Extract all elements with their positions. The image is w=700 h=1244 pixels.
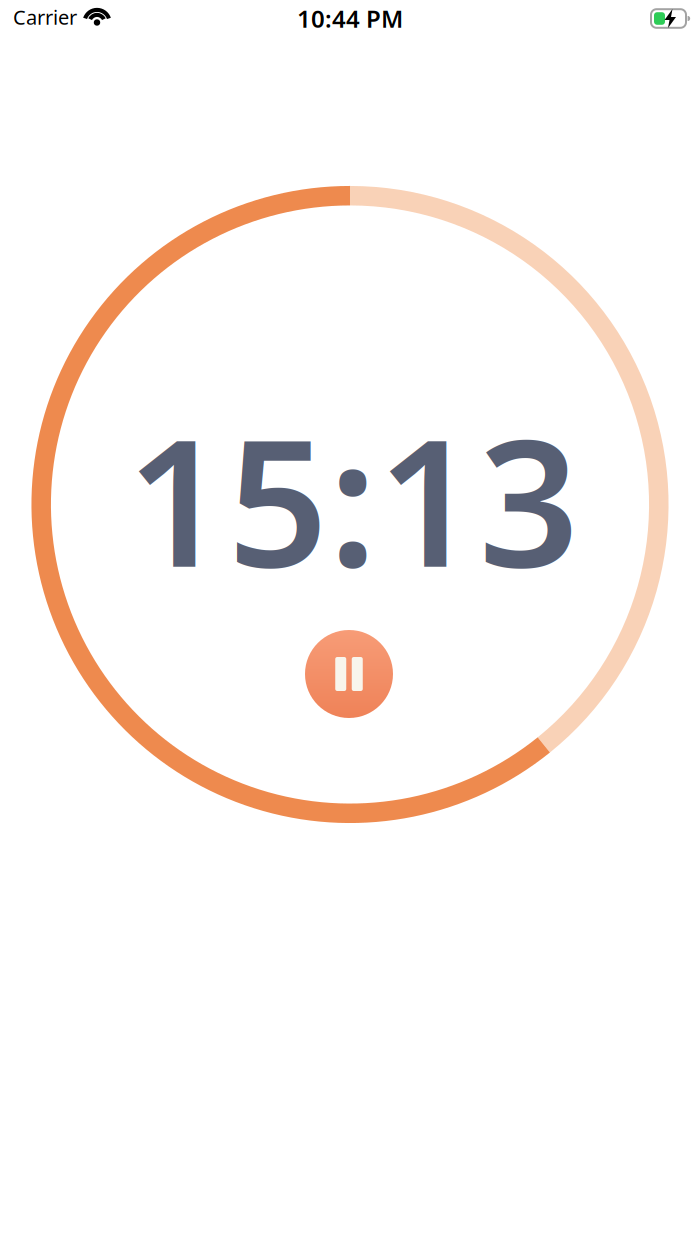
staticText: 15:13 bbox=[126, 382, 579, 615]
button[interactable]: Pause bbox=[305, 630, 393, 718]
staticText: 10:44 PM bbox=[297, 3, 403, 34]
staticText: Carrier bbox=[13, 4, 77, 30]
